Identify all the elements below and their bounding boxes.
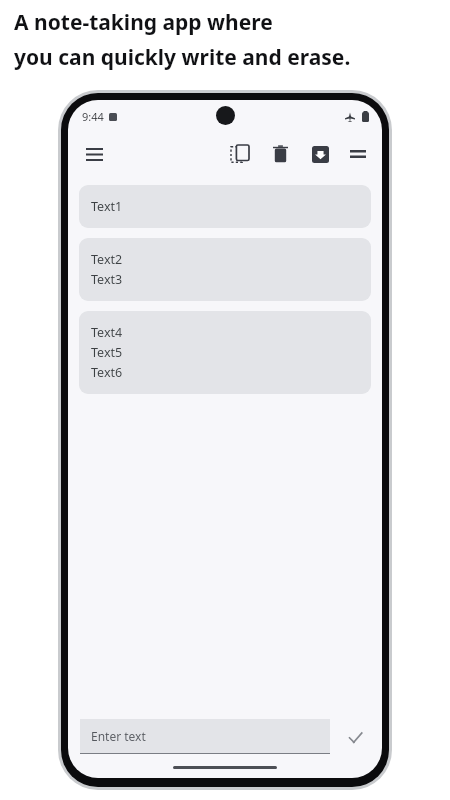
staticText: you can quickly write and erase. [14,43,351,72]
button[interactable]: Reorder [340,136,376,172]
button[interactable]: Duplicate [222,136,258,172]
button[interactable]: Delete [262,136,298,172]
button[interactable]: Menu [74,134,114,174]
staticText: 9:44 [82,109,104,124]
button[interactable]: Confirm [338,720,372,754]
staticText: Text4 [91,324,123,341]
staticText: Text2 [91,251,123,268]
staticText: Enter text [91,728,146,744]
staticText: Text5 [91,344,123,361]
button[interactable]: Text1 [79,185,371,228]
staticText: A note-taking app where [14,8,273,37]
button[interactable]: Enter text [80,719,330,754]
staticText: Text6 [91,364,123,381]
staticText: Text3 [91,271,123,288]
button[interactable]: Text2 [79,238,371,301]
button[interactable]: Save [302,136,338,172]
staticText: Text1 [91,198,123,215]
button[interactable]: Text4 [79,311,371,394]
